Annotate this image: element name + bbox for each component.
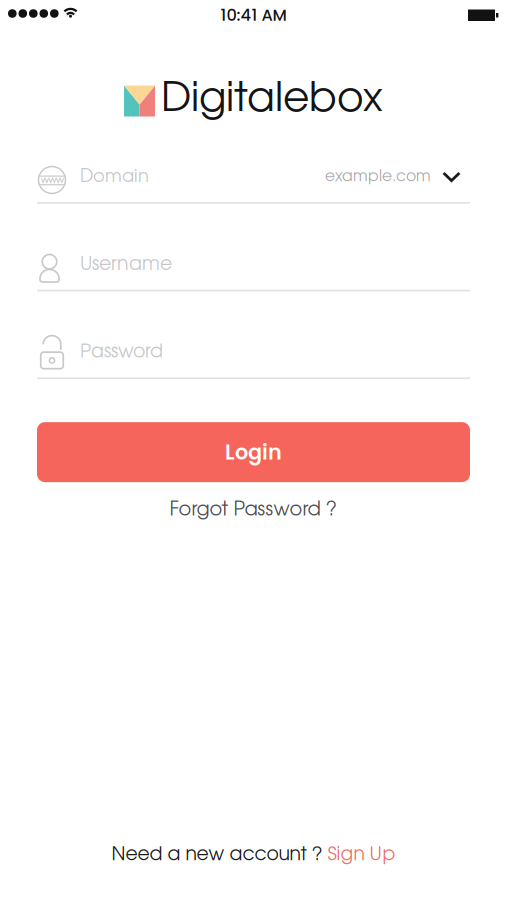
- staticText: example.com: [325, 170, 431, 184]
- button[interactable]: Login: [37, 422, 470, 482]
- staticText: Domain: [80, 169, 149, 185]
- staticText: Forgot Password ?: [169, 501, 337, 519]
- staticText: Login: [225, 437, 282, 467]
- button[interactable]: Username: [37, 246, 470, 291]
- button[interactable]: Forgot Password ?: [161, 497, 345, 523]
- staticText: Password: [80, 344, 163, 361]
- staticText: Need a new account ?: [111, 846, 322, 864]
- button[interactable]: Domain: [37, 158, 470, 204]
- staticText: Username: [80, 256, 172, 273]
- staticText: Sign Up: [327, 846, 395, 864]
- button[interactable]: Password: [37, 333, 470, 379]
- button[interactable]: Sign Up: [327, 846, 395, 864]
- staticText: Digitalebox: [161, 81, 383, 119]
- staticText: 10:41 AM: [220, 4, 286, 26]
